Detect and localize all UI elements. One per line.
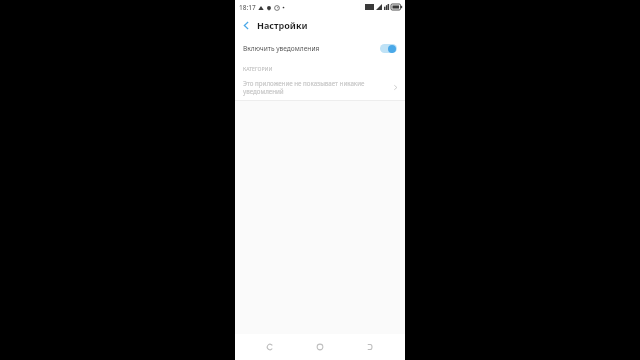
staticText: Это приложение не показывает никакие уве… bbox=[243, 79, 388, 95]
button[interactable]: Назад bbox=[355, 334, 385, 360]
button[interactable]: Включить уведомления bbox=[235, 36, 405, 60]
button[interactable]: Это приложение не показывает никакие уве… bbox=[235, 74, 405, 100]
button[interactable]: Назад bbox=[235, 14, 257, 36]
button[interactable]: Домой bbox=[305, 334, 335, 360]
staticText: КАТЕГОРИИ bbox=[243, 65, 273, 72]
staticText: 18:17 bbox=[239, 3, 256, 12]
staticText: Настройки bbox=[257, 19, 308, 31]
button[interactable]: Недавние bbox=[255, 334, 285, 360]
staticText: Включить уведомления bbox=[243, 44, 380, 53]
